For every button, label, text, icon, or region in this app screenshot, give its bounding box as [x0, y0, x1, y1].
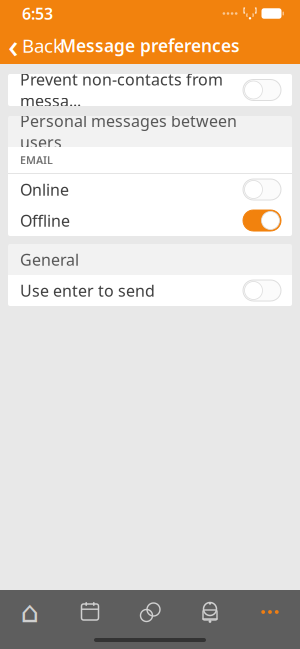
- button[interactable]: Offline: [8, 205, 292, 236]
- staticText: Use enter to send: [20, 280, 155, 301]
- button[interactable]: Online: [8, 174, 292, 205]
- staticText: Online: [20, 179, 69, 200]
- staticText: 6:53: [22, 3, 53, 24]
- staticText: Back: [22, 33, 63, 58]
- staticText: ‹: [8, 24, 18, 67]
- staticText: ⌂: [20, 595, 39, 629]
- staticText: General: [20, 249, 79, 270]
- staticText: Message preferences: [60, 34, 240, 57]
- button[interactable]: More: [240, 595, 300, 629]
- button[interactable]: Calendar: [60, 595, 120, 629]
- button[interactable]: Messages: [120, 595, 180, 629]
- button[interactable]: Home: [0, 595, 60, 629]
- staticText: EMAIL: [20, 153, 53, 167]
- button[interactable]: ‹: [0, 27, 73, 64]
- staticText: Personal messages between users: [20, 110, 237, 153]
- button[interactable]: Prevent non-contacts from messa...: [8, 74, 292, 106]
- staticText: Offline: [20, 210, 70, 231]
- button[interactable]: Use enter to send: [8, 275, 292, 306]
- staticText: Prevent non-contacts from messa...: [20, 69, 223, 111]
- button[interactable]: Notifications: [180, 595, 240, 629]
